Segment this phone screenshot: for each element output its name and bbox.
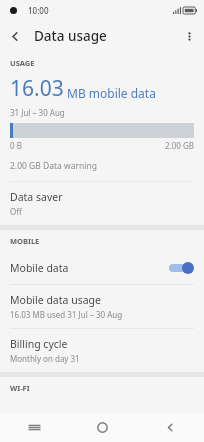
staticText: 0 B bbox=[10, 140, 22, 151]
staticText: 2.00 GB Data warning bbox=[10, 160, 97, 172]
button[interactable]: Back bbox=[136, 413, 204, 442]
staticText: Data saver bbox=[10, 190, 63, 204]
staticText: 31 Jul – 30 Aug bbox=[10, 107, 65, 118]
button[interactable]: Mobile data bbox=[0, 252, 204, 284]
staticText: 2.00 GB bbox=[22, 140, 194, 151]
staticText: Off bbox=[10, 206, 22, 217]
button[interactable]: Back bbox=[0, 21, 30, 51]
button[interactable]: Data saver bbox=[0, 182, 204, 225]
staticText: USAGE bbox=[10, 58, 35, 68]
button[interactable]: More options bbox=[174, 21, 204, 51]
staticText: Data usage bbox=[34, 27, 107, 45]
button[interactable]: Home bbox=[68, 413, 136, 442]
staticText: Mobile data usage bbox=[10, 293, 101, 307]
staticText: Billing cycle bbox=[10, 337, 68, 351]
staticText: 16.03 bbox=[10, 74, 64, 103]
button[interactable]: Billing cycle bbox=[0, 329, 204, 372]
staticText: MB mobile data bbox=[67, 85, 156, 101]
staticText: MOBILE bbox=[10, 236, 40, 246]
staticText: 10:00 bbox=[28, 5, 49, 16]
staticText: Mobile data bbox=[10, 261, 168, 275]
staticText: 16.03 MB used 31 Jul – 30 Aug bbox=[10, 309, 123, 320]
button[interactable]: Mobile data usage bbox=[0, 285, 204, 328]
staticText: Monthly on day 31 bbox=[10, 353, 80, 364]
button[interactable]: Recent apps bbox=[0, 413, 68, 442]
staticText: WI-FI bbox=[10, 383, 30, 393]
